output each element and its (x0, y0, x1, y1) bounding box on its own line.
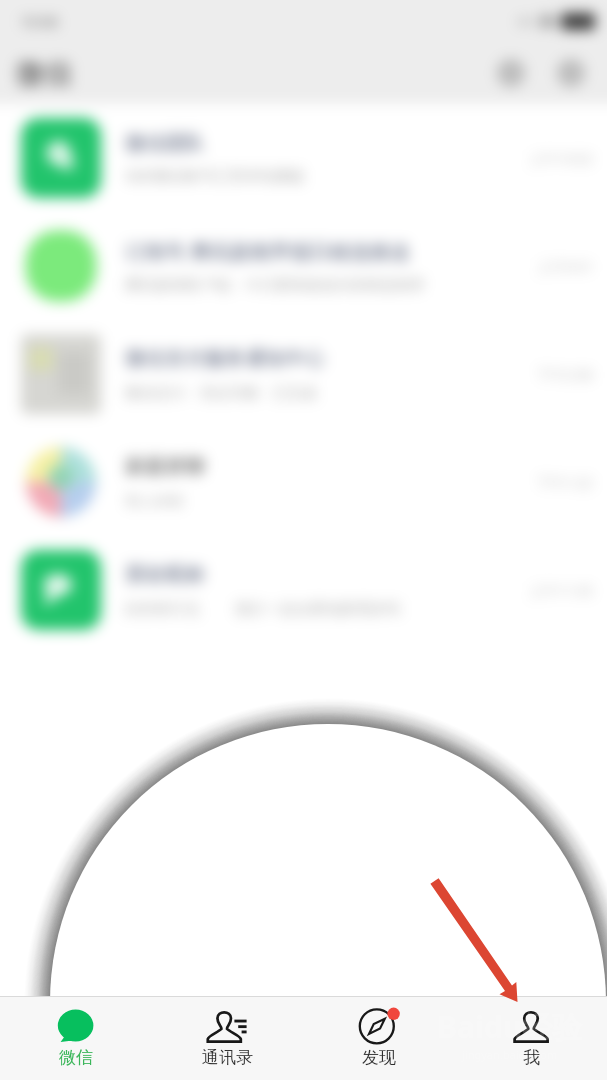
staticText: 微信支付服务通知中心 (125, 346, 325, 371)
staticText: 10:06 (20, 11, 59, 31)
staticText: jingyan.baidu.com (462, 1047, 558, 1062)
staticText: 你的微信账号已登录电脑版 (125, 167, 305, 186)
staticText: 微信 (59, 1047, 93, 1068)
button[interactable]: 微信 (0, 997, 151, 1080)
staticText: 发现 (362, 1047, 396, 1068)
staticText: 微信支付：凭证到账 已完成 (125, 382, 317, 402)
button[interactable]: 发现 (303, 997, 455, 1080)
button[interactable]: 微信支付服务通知中心 (0, 320, 607, 428)
staticText: 通讯录 (202, 1047, 253, 1068)
button[interactable]: 我 (455, 997, 607, 1080)
staticText: 家庭群聊 (125, 454, 205, 479)
button[interactable]: 朋友昵称 (0, 536, 607, 644)
button[interactable]: 订阅号 腾讯新闻早报日精选推送 (0, 212, 607, 320)
staticText: 好的明天见 我们一起去看电影吧好吗 (125, 598, 401, 618)
staticText: 腾讯新闻客户端：今日要闻速览内容精选推荐 (125, 276, 425, 295)
staticText: 微信团队 (125, 131, 205, 156)
staticText: 订阅号 腾讯新闻早报日精选推送 (125, 238, 411, 265)
button[interactable]: 通讯录 (151, 997, 303, 1080)
button[interactable]: 微信团队 (0, 104, 607, 212)
button[interactable]: 家庭群聊 (0, 428, 607, 536)
staticText: 我 (523, 1047, 540, 1068)
staticText: 朋友昵称 (125, 562, 205, 587)
staticText: 微信 (16, 56, 72, 91)
staticText: Baidu经验 (437, 1006, 583, 1047)
